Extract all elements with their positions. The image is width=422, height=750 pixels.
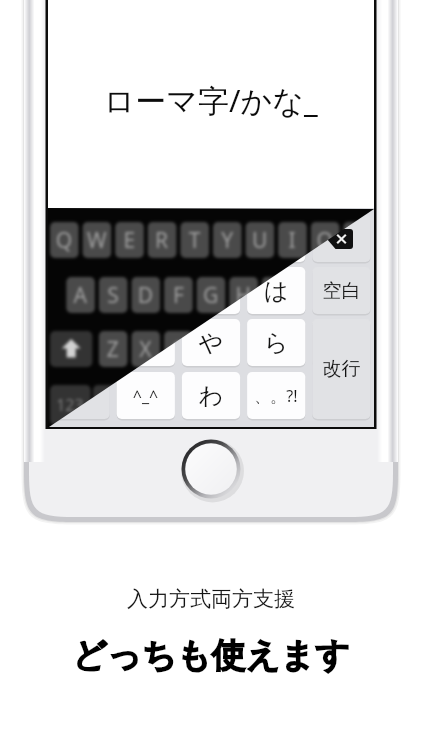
- button[interactable]: Keyboard: [48, 208, 374, 427]
- staticText: どっちも使えます: [72, 634, 350, 677]
- staticText: 入力方式両方支援: [127, 586, 295, 612]
- button[interactable]: Home button: [180, 437, 242, 499]
